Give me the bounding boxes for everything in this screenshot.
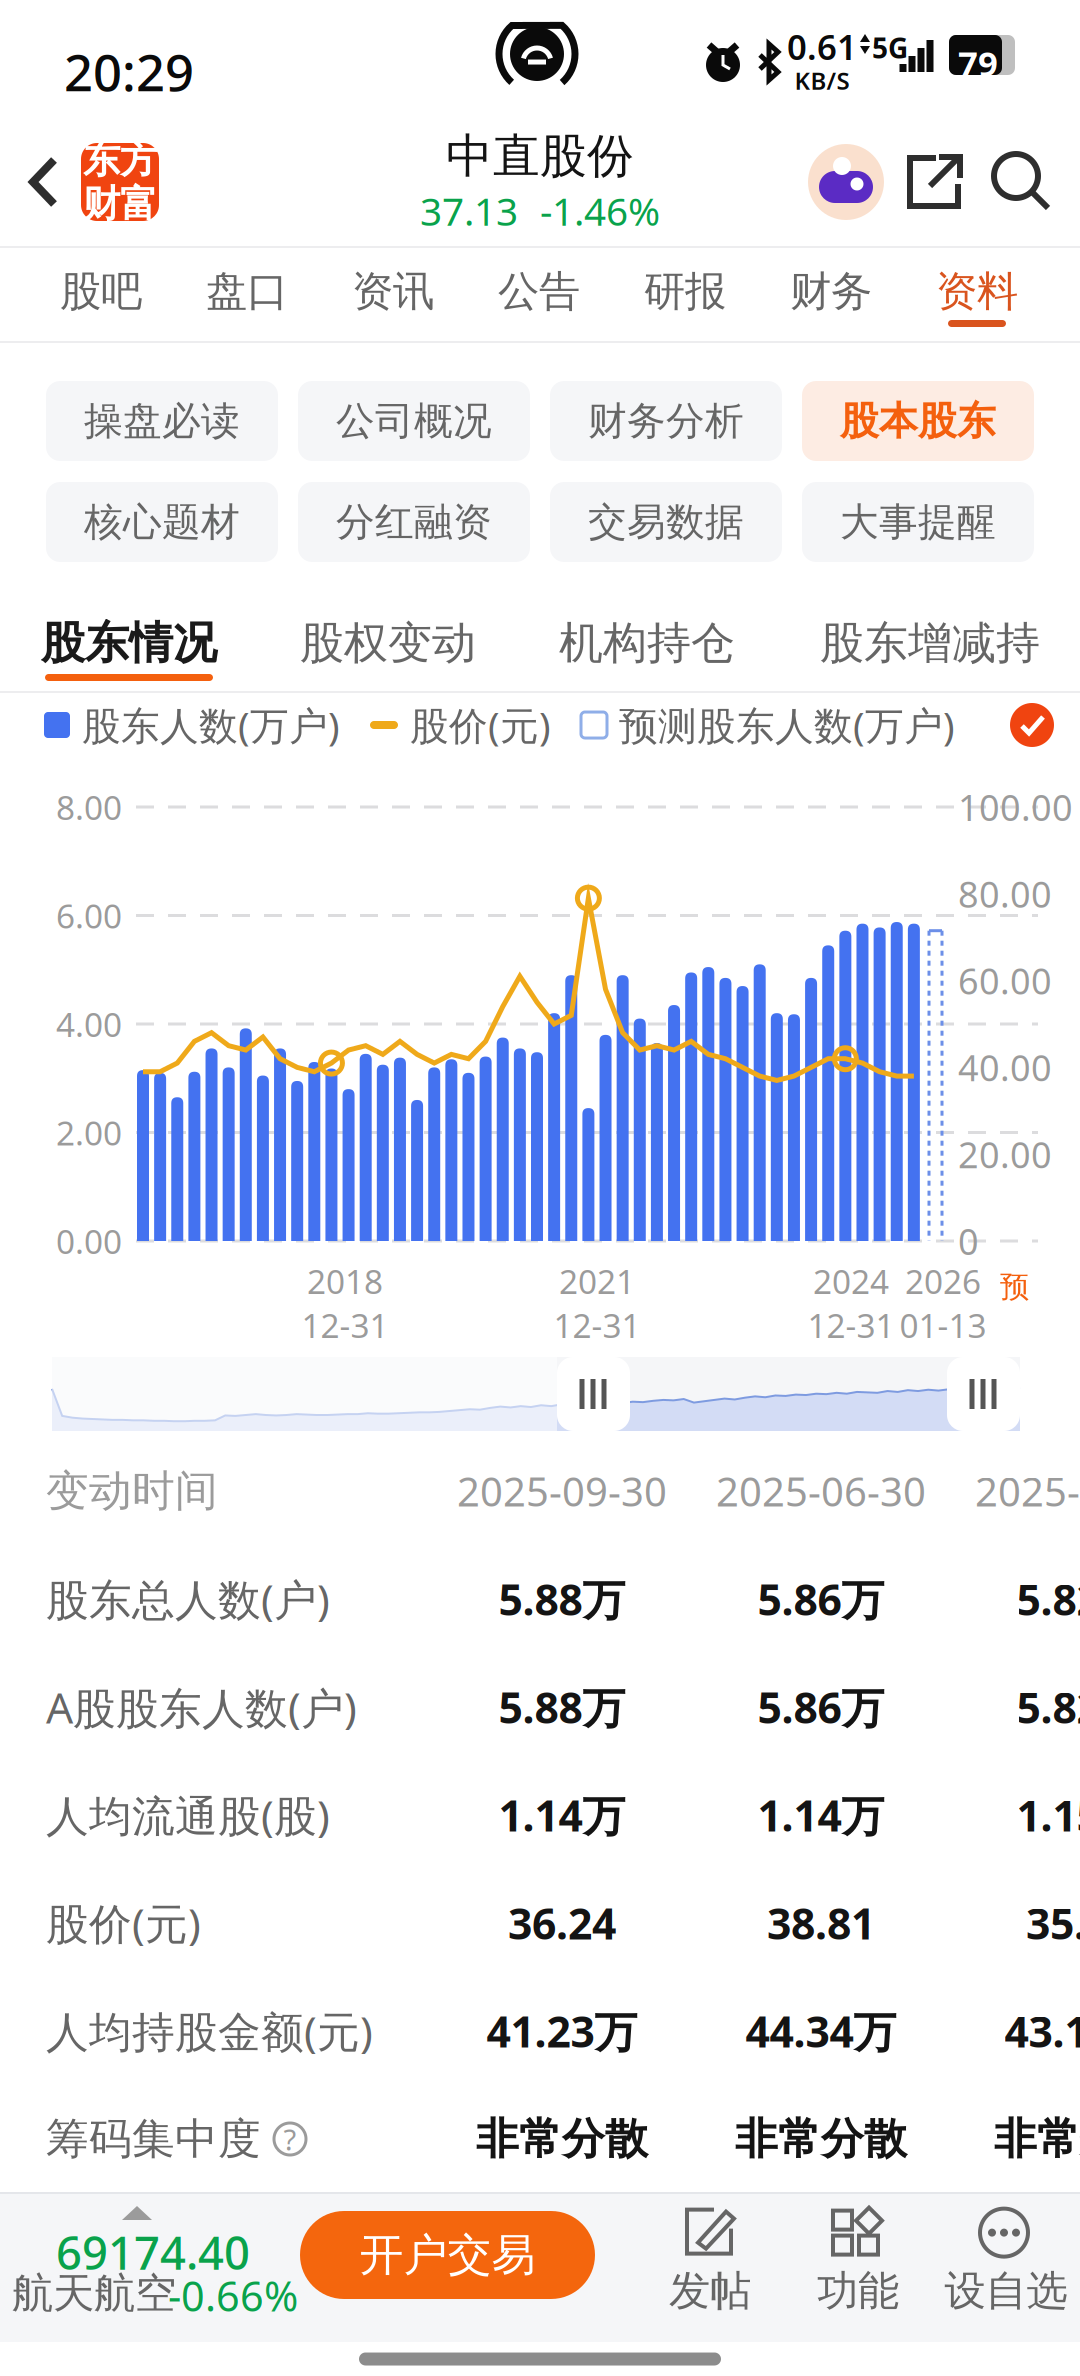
staticText: 人均持股金额(元) [46, 2003, 373, 2059]
staticText: 5.88万 [498, 1571, 625, 1627]
staticText: 股东增减持 [820, 616, 1040, 670]
staticText: 35.10 [1026, 1895, 1080, 1951]
staticText: 研报 [644, 266, 726, 317]
staticText: 2.00 [56, 1110, 122, 1155]
staticText: 非常分散 [735, 2113, 907, 2165]
staticText: 变动时间 [46, 1465, 218, 1517]
staticText: 2018 [307, 1259, 383, 1303]
button[interactable]: 股权变动 [268, 600, 508, 691]
staticText: 操盘必读 [84, 397, 240, 445]
button[interactable]: 股吧 [31, 248, 171, 341]
staticText: 盘口 [206, 266, 288, 317]
staticText: 财务分析 [588, 397, 744, 445]
button[interactable]: 大事提醒 [802, 482, 1034, 562]
staticText: 1.14万 [757, 1787, 884, 1843]
button[interactable]: 资料 [907, 248, 1047, 341]
staticText: 2025-06-30 [716, 1464, 926, 1517]
staticText: -1.46% [540, 185, 660, 236]
staticText: ? [283, 2119, 296, 2158]
staticText: 财务 [790, 266, 872, 317]
button[interactable]: AI assistant [802, 118, 890, 246]
staticText: 股东人数(万户) [82, 699, 340, 751]
button[interactable]: 财务 [761, 248, 901, 341]
staticText: 东方 [83, 137, 157, 183]
staticText: 80.00 [958, 870, 1052, 918]
staticText: 资料 [936, 266, 1018, 317]
staticText: 公告 [498, 266, 580, 317]
button[interactable]: 分红融资 [298, 482, 530, 562]
staticText: 2025-03-31 [975, 1464, 1080, 1517]
staticText: 4.00 [56, 1002, 122, 1046]
button[interactable]: 开户交易 [300, 2211, 595, 2299]
staticText: 股东总人数(户) [46, 1571, 330, 1627]
staticText: 公司概况 [336, 397, 492, 445]
button[interactable]: 交易数据 [550, 482, 782, 562]
staticText: 5.88万 [498, 1679, 625, 1735]
staticText: 发帖 [669, 2266, 751, 2316]
button[interactable]: Range end [947, 1357, 1020, 1431]
staticText: 44.34万 [745, 2003, 896, 2059]
staticText: 5.86万 [757, 1571, 884, 1627]
button[interactable]: 操盘必读 [46, 381, 278, 461]
staticText: 资讯 [352, 266, 434, 317]
staticText: 股价(元) [46, 1895, 201, 1951]
button[interactable]: Toggle forecast series [1008, 700, 1056, 750]
staticText: 38.81 [767, 1895, 875, 1951]
staticText: 非常分散 [994, 2113, 1080, 2165]
staticText: 功能 [817, 2266, 899, 2316]
staticText: 中直股份 [446, 128, 634, 185]
staticText: A股股东人数(户) [46, 1679, 357, 1735]
button[interactable]: 发帖 [636, 2202, 784, 2320]
staticText: 设自选 [944, 2266, 1067, 2316]
staticText: 2021 [559, 1259, 635, 1303]
staticText: 0.00 [56, 1219, 122, 1263]
staticText: 预 [1000, 1269, 1029, 1305]
button[interactable]: 股本股东 [802, 381, 1034, 461]
button[interactable]: Back [0, 118, 175, 246]
staticText: 航天航空 [12, 2268, 176, 2319]
staticText: 预测股东人数(万户) [619, 699, 955, 751]
button[interactable]: 资讯 [323, 248, 463, 341]
staticText: 核心题材 [84, 498, 240, 546]
staticText: 41.23万 [486, 2003, 637, 2059]
staticText: 12-31 [807, 1303, 894, 1347]
button[interactable]: 研报 [615, 248, 755, 341]
staticText: 36.24 [508, 1895, 616, 1951]
staticText: 开户交易 [359, 2228, 535, 2282]
staticText: 2026 [905, 1259, 981, 1303]
staticText: 5.86万 [757, 1679, 884, 1735]
staticText: 01-13 [899, 1303, 986, 1347]
staticText: 5.82万 [1016, 1679, 1080, 1735]
staticText: 79 [958, 40, 998, 86]
button[interactable]: 股东增减持 [810, 600, 1050, 691]
staticText: 2024 [813, 1259, 889, 1303]
staticText: 20:29 [64, 38, 194, 105]
staticText: KB/S [794, 65, 849, 96]
button[interactable]: 机构持仓 [527, 600, 767, 691]
staticText: 60.00 [958, 957, 1052, 1004]
button[interactable]: 设自选 [932, 2202, 1080, 2320]
button[interactable]: 核心题材 [46, 482, 278, 562]
staticText: 1.15万 [1016, 1787, 1080, 1843]
staticText: 股吧 [60, 266, 142, 317]
staticText: 12-31 [301, 1303, 388, 1347]
staticText: 2025-09-30 [457, 1464, 667, 1517]
staticText: 5.82万 [1016, 1571, 1080, 1627]
staticText: 股价(元) [410, 699, 551, 751]
button[interactable]: Range start [557, 1357, 630, 1431]
button[interactable]: 股东情况 [9, 600, 249, 691]
button[interactable]: 公告 [469, 248, 609, 341]
button[interactable]: Share [890, 118, 978, 246]
staticText: 40.00 [958, 1043, 1052, 1091]
staticText: 20.00 [958, 1130, 1052, 1178]
button[interactable]: Search [978, 118, 1066, 246]
button[interactable]: Index quote 航天航空 [0, 2210, 288, 2322]
button[interactable]: 功能 [784, 2202, 932, 2320]
button[interactable]: 公司概况 [298, 381, 530, 461]
staticText: -0.66% [168, 2268, 298, 2323]
staticText: 43.12万 [1004, 2003, 1080, 2059]
staticText: 股权变动 [300, 616, 476, 670]
button[interactable]: 盘口 [177, 248, 317, 341]
staticText: 股东情况 [41, 616, 217, 670]
button[interactable]: 财务分析 [550, 381, 782, 461]
